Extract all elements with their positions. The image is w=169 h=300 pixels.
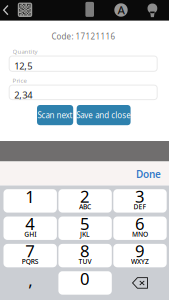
staticText: Scan next: [38, 110, 73, 121]
staticText: 8: [80, 239, 90, 262]
staticText: 7: [25, 239, 35, 262]
button[interactable]: Save and close: [77, 105, 131, 125]
staticText: 2,34: [14, 89, 32, 101]
staticText: GHI: [24, 229, 36, 239]
button[interactable]: Torch: [147, 2, 158, 17]
staticText: DEF: [133, 202, 146, 211]
staticText: 2: [80, 185, 90, 207]
button[interactable]: 0: [58, 271, 112, 295]
staticText: WXYZ: [131, 257, 149, 266]
button[interactable]: Scan next: [37, 105, 73, 125]
button[interactable]: 4: [3, 216, 57, 240]
button[interactable]: 7: [3, 244, 57, 267]
staticText: PQRS: [22, 257, 39, 266]
staticText: 4: [25, 212, 35, 235]
button[interactable]: Delete: [113, 271, 167, 295]
staticText: 3: [135, 185, 145, 207]
staticText: 5: [80, 212, 90, 235]
staticText: Done: [136, 167, 161, 181]
staticText: MNO: [132, 229, 148, 239]
button[interactable]: Scanned code: [18, 3, 32, 17]
button[interactable]: Auto flash: [114, 3, 128, 17]
button[interactable]: Back: [2, 5, 9, 16]
staticText: 12,5: [14, 60, 32, 72]
staticText: TUV: [79, 257, 92, 266]
button[interactable]: 6: [113, 216, 167, 240]
staticText: 1: [25, 185, 35, 208]
button[interactable]: 1: [3, 189, 57, 213]
button[interactable]: 8: [58, 244, 112, 267]
button[interactable]: 2: [58, 189, 112, 213]
staticText: Quantity: [13, 47, 38, 55]
staticText: 9: [135, 239, 145, 262]
button[interactable]: Flash: [85, 2, 94, 17]
button[interactable]: 3: [113, 189, 167, 213]
button[interactable]: Comma: [3, 271, 57, 295]
staticText: Save and close: [76, 110, 131, 121]
button[interactable]: 5: [58, 216, 112, 240]
button[interactable]: Done: [133, 164, 164, 184]
staticText: Code: 17121116: [51, 31, 115, 42]
staticText: JKL: [80, 229, 90, 239]
staticText: 6: [135, 212, 145, 235]
staticText: 0: [80, 267, 90, 290]
button[interactable]: 9: [113, 244, 167, 267]
staticText: ,: [28, 269, 32, 291]
staticText: A: [117, 2, 124, 17]
staticText: ABC: [79, 202, 91, 211]
staticText: Price: [13, 76, 27, 85]
